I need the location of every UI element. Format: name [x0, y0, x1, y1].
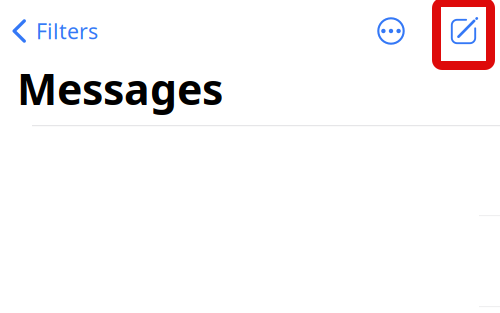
staticText: Messages [17, 60, 223, 117]
button[interactable]: Filters [0, 9, 108, 53]
staticText: Filters [36, 17, 98, 45]
button[interactable]: More [369, 9, 413, 53]
button[interactable]: New Message [432, 0, 495, 70]
